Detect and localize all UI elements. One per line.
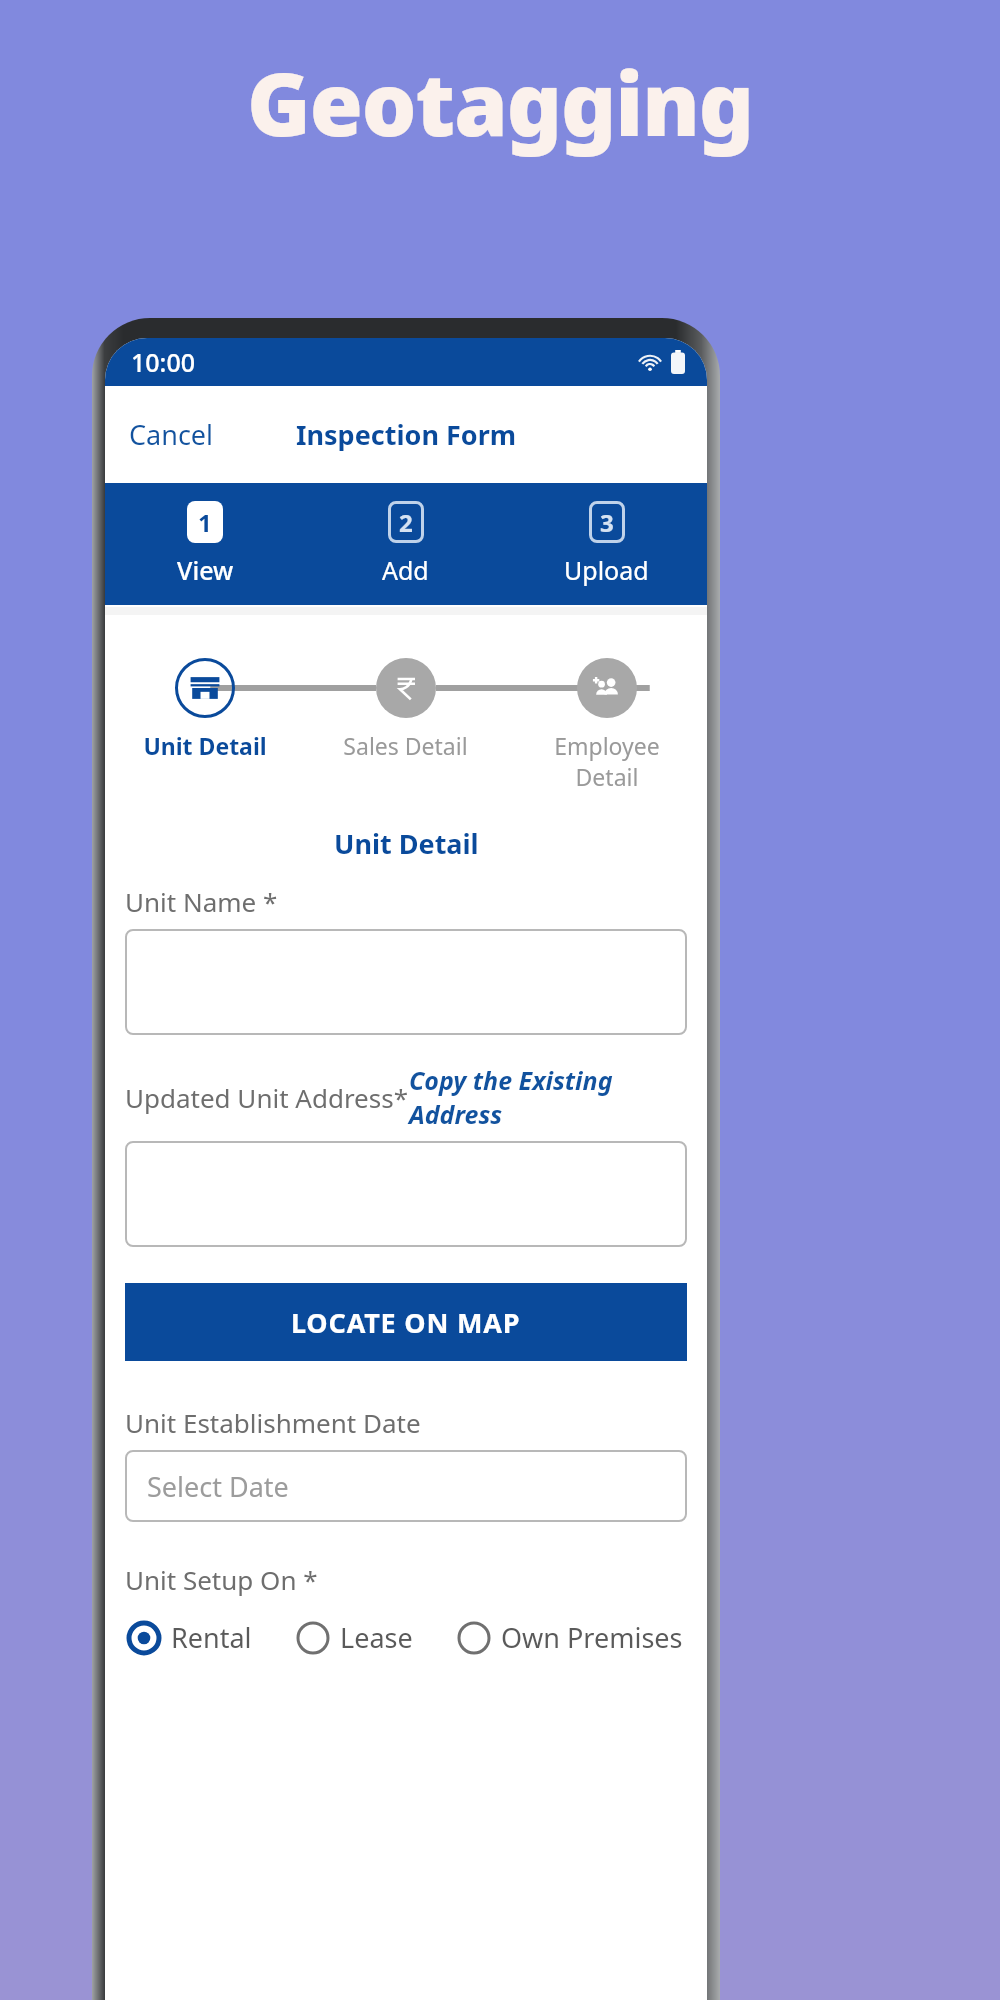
button[interactable]: 1 xyxy=(105,483,305,605)
button[interactable]: Own Premises xyxy=(453,1615,687,1660)
staticText: View xyxy=(177,553,234,587)
staticText: Upload xyxy=(564,553,649,587)
staticText: LOCATE ON MAP xyxy=(291,1304,521,1341)
staticText: 2 xyxy=(399,506,413,539)
staticText: Updated Unit Address* xyxy=(125,1080,409,1115)
button[interactable] xyxy=(125,929,687,1035)
button[interactable]: Copy the Existing Address xyxy=(409,1063,687,1131)
button[interactable]: Sales Detail xyxy=(305,658,506,761)
button[interactable]: Select Date xyxy=(125,1450,687,1522)
staticText: Employee Detail xyxy=(554,730,660,792)
staticText: Copy the Existing Address xyxy=(409,1063,687,1131)
staticText: Geotagging xyxy=(247,44,754,161)
button[interactable]: Cancel xyxy=(105,404,238,465)
staticText: Unit Establishment Date xyxy=(125,1405,421,1440)
staticText: Cancel xyxy=(129,416,214,453)
staticText: Select Date xyxy=(147,1468,289,1505)
staticText: Rental xyxy=(171,1619,252,1656)
staticText: Unit Detail xyxy=(143,730,267,761)
staticText: Add xyxy=(382,553,429,587)
button[interactable]: Rental xyxy=(123,1615,256,1660)
button[interactable]: Unit Detail xyxy=(105,658,305,761)
button[interactable]: 3 xyxy=(506,483,707,605)
staticText: Unit Setup On * xyxy=(125,1562,318,1597)
button[interactable]: Employee Detail xyxy=(506,658,707,792)
staticText: Own Premises xyxy=(501,1619,683,1656)
button[interactable]: LOCATE ON MAP xyxy=(125,1283,687,1361)
staticText: Inspection Form xyxy=(296,416,517,453)
staticText: Lease xyxy=(340,1619,413,1656)
staticText: Unit Name * xyxy=(125,884,278,919)
button[interactable] xyxy=(125,1141,687,1247)
staticText: Sales Detail xyxy=(343,730,468,761)
staticText: Unit Detail xyxy=(334,825,479,862)
button[interactable]: Lease xyxy=(292,1615,417,1660)
staticText: 10:00 xyxy=(131,345,196,379)
button[interactable]: 2 xyxy=(305,483,506,605)
staticText: 3 xyxy=(600,506,614,539)
staticText: 1 xyxy=(198,506,212,539)
